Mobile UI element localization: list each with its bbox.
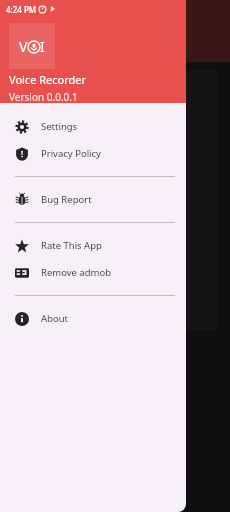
staticText: Version 0.0.0.1 xyxy=(9,90,78,103)
button[interactable]: Privacy Policy xyxy=(0,140,186,167)
staticText: Privacy Policy xyxy=(41,147,101,160)
button[interactable]: Bug Report xyxy=(0,186,186,213)
staticText: 4:24 PM xyxy=(6,4,37,15)
staticText: Rate This App xyxy=(41,239,102,252)
button[interactable]: Settings xyxy=(0,113,186,140)
button[interactable]: Record xyxy=(6,280,54,328)
staticText: Settings xyxy=(41,120,78,133)
staticText: Voice Recorder xyxy=(9,72,87,87)
staticText: Start xyxy=(14,146,39,161)
button[interactable]: Remove admob xyxy=(0,259,186,286)
button[interactable]: About xyxy=(0,305,186,332)
staticText: About xyxy=(41,312,68,325)
button[interactable]: Rate This App xyxy=(0,232,186,259)
staticText: V xyxy=(19,37,28,56)
staticText: Bug Report xyxy=(41,193,92,206)
staticText: I xyxy=(40,37,45,56)
staticText: Remove admob xyxy=(41,266,112,279)
